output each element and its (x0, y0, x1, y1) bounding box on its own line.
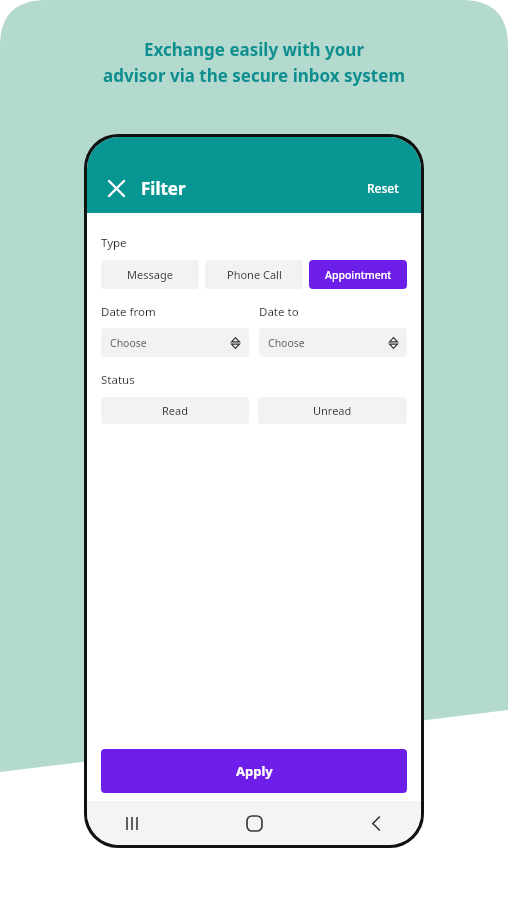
button[interactable]: Apply (101, 749, 407, 793)
staticText: Exchange easily with your advisor via th… (103, 38, 405, 87)
staticText: Reset (367, 180, 399, 196)
button[interactable]: Unread (258, 397, 407, 424)
staticText: Unread (313, 403, 352, 418)
button[interactable]: Home (237, 806, 271, 840)
button[interactable]: Appointment (309, 260, 407, 289)
button[interactable]: Recent apps (115, 806, 149, 840)
staticText: Filter (141, 177, 186, 200)
button[interactable]: Message (101, 260, 199, 289)
staticText: Choose (110, 336, 147, 350)
staticText: Apply (236, 762, 273, 780)
button[interactable]: Read (101, 397, 249, 424)
staticText: Read (162, 403, 188, 418)
staticText: Date to (259, 304, 299, 320)
staticText: Appointment (325, 268, 392, 282)
button[interactable]: Back (359, 806, 393, 840)
button[interactable]: Choose (259, 328, 407, 357)
button[interactable]: Reset (363, 176, 403, 200)
button[interactable]: Close (103, 175, 129, 201)
staticText: Type (101, 235, 127, 251)
staticText: Date from (101, 304, 156, 320)
staticText: Message (127, 267, 173, 282)
button[interactable]: Choose (101, 328, 249, 357)
staticText: Phone Call (227, 267, 282, 282)
staticText: Status (101, 372, 135, 388)
button[interactable]: Phone Call (205, 260, 303, 289)
staticText: Choose (268, 336, 305, 350)
